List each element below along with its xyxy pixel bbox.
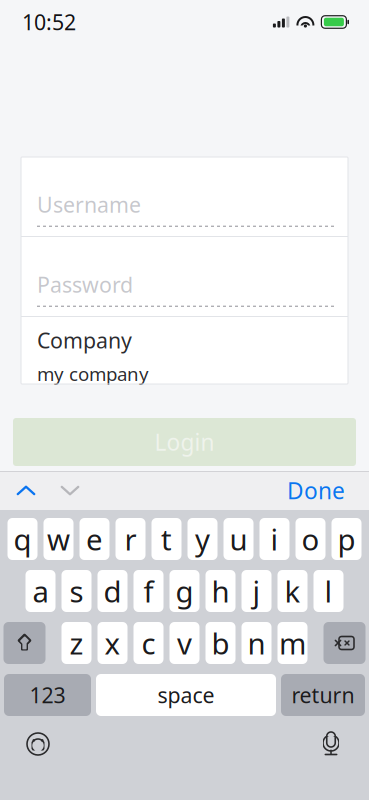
button[interactable]: l [313, 570, 343, 612]
staticText: k [284, 571, 300, 610]
staticText: n [247, 623, 265, 662]
button[interactable]: space [96, 674, 276, 716]
button[interactable]: Next field [48, 471, 92, 509]
staticText: Done [287, 475, 345, 505]
staticText: return [291, 681, 354, 709]
button[interactable]: Delete [323, 622, 365, 664]
button[interactable]: return [281, 674, 365, 716]
button[interactable]: 123 [4, 674, 91, 716]
button[interactable]: j [241, 570, 271, 612]
button[interactable]: Emoji keyboard [16, 726, 60, 762]
staticText: u [229, 519, 247, 558]
button[interactable]: g [169, 570, 199, 612]
staticText: p [337, 519, 355, 558]
button[interactable]: p [331, 518, 361, 560]
button[interactable]: Dictation [309, 726, 353, 762]
staticText: Password [37, 270, 133, 299]
button[interactable]: s [61, 570, 91, 612]
button[interactable]: v [169, 622, 199, 664]
button[interactable]: n [241, 622, 271, 664]
button[interactable]: c [133, 622, 163, 664]
button[interactable]: Done [281, 471, 351, 509]
staticText: l [324, 571, 332, 610]
staticText: y [195, 519, 210, 558]
staticText: m [279, 623, 306, 662]
button[interactable]: z [61, 622, 91, 664]
button[interactable]: y [187, 518, 217, 560]
button[interactable]: m [277, 622, 307, 664]
staticText: b [211, 623, 229, 662]
staticText: z [69, 623, 83, 662]
staticText: g [175, 571, 193, 610]
staticText: r [124, 519, 136, 558]
button[interactable]: b [205, 622, 235, 664]
staticText: e [86, 519, 103, 558]
staticText: v [177, 623, 192, 662]
staticText: my company [37, 361, 149, 386]
button[interactable]: Username [21, 157, 348, 236]
button[interactable]: i [259, 518, 289, 560]
button[interactable]: x [97, 622, 127, 664]
button[interactable]: Password [21, 237, 348, 316]
button[interactable]: k [277, 570, 307, 612]
staticText: t [161, 519, 172, 558]
staticText: o [301, 519, 319, 558]
button[interactable]: Company [21, 317, 348, 384]
staticText: Login [154, 427, 214, 457]
staticText: s [69, 571, 83, 610]
staticText: Username [37, 190, 141, 219]
staticText: x [104, 623, 120, 662]
staticText: c [141, 623, 155, 662]
staticText: i [270, 519, 278, 558]
button[interactable]: q [7, 518, 37, 560]
staticText: d [103, 571, 121, 610]
button[interactable]: d [97, 570, 127, 612]
button[interactable]: o [295, 518, 325, 560]
button[interactable]: Previous field [4, 471, 48, 509]
button[interactable]: r [115, 518, 145, 560]
button[interactable]: w [43, 518, 73, 560]
staticText: 10:52 [22, 8, 76, 36]
button[interactable]: h [205, 570, 235, 612]
staticText: h [211, 571, 229, 610]
staticText: space [157, 681, 214, 709]
staticText: a [32, 571, 48, 610]
staticText: j [252, 571, 260, 610]
button[interactable]: t [151, 518, 181, 560]
staticText: q [13, 519, 31, 558]
button[interactable]: e [79, 518, 109, 560]
button[interactable]: Shift [3, 622, 45, 664]
button[interactable]: a [25, 570, 55, 612]
button[interactable]: f [133, 570, 163, 612]
staticText: f [143, 571, 153, 610]
staticText: w [47, 519, 70, 558]
button[interactable]: u [223, 518, 253, 560]
staticText: Company [37, 326, 132, 354]
staticText: 123 [29, 681, 65, 709]
